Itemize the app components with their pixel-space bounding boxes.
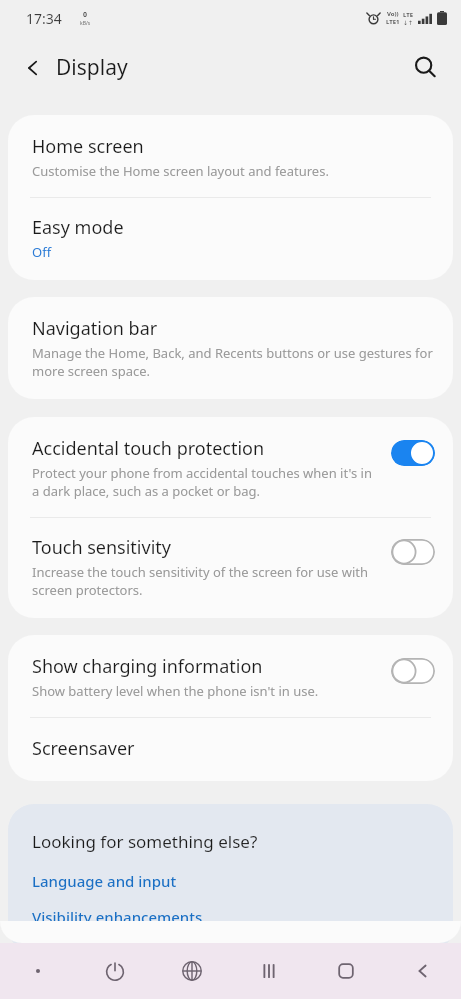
button[interactable]: Accidental touch protection xyxy=(8,417,453,517)
staticText: kB/s xyxy=(80,20,91,27)
staticText: Show charging information xyxy=(32,654,263,679)
button[interactable]: Show charging information off xyxy=(391,658,435,684)
button[interactable]: Search xyxy=(403,45,447,89)
button[interactable]: Globe xyxy=(153,943,230,999)
button[interactable]: Touch sensitivity xyxy=(8,518,453,618)
staticText: Language and input xyxy=(32,871,177,891)
button[interactable]: Language and input xyxy=(32,871,177,891)
staticText: LTE xyxy=(403,11,414,19)
button[interactable]: Visibility enhancements xyxy=(32,907,203,927)
staticText: Off xyxy=(32,243,52,261)
button[interactable]: Home screen xyxy=(8,115,453,197)
button[interactable]: Back xyxy=(0,45,136,90)
button[interactable]: Screensaver xyxy=(8,718,453,781)
staticText: Vo)) xyxy=(387,10,399,18)
staticText: Home screen xyxy=(32,134,144,159)
button[interactable]: Recents xyxy=(230,943,307,999)
button[interactable]: Accidental touch protection on xyxy=(391,440,435,466)
staticText: Show battery level when the phone isn't … xyxy=(32,682,319,700)
staticText: Easy mode xyxy=(32,215,124,240)
button[interactable]: Navigation bar xyxy=(8,297,453,399)
button[interactable]: Back xyxy=(384,943,461,999)
staticText: Manage the Home, Back, and Recents butto… xyxy=(32,344,435,380)
button[interactable]: Touch sensitivity off xyxy=(391,539,435,565)
staticText: LTE1 xyxy=(386,18,400,26)
button[interactable]: Home xyxy=(307,943,384,999)
staticText: Protect your phone from accidental touch… xyxy=(32,464,381,500)
staticText: Visibility enhancements xyxy=(32,907,203,927)
staticText: Screensaver xyxy=(32,736,135,761)
staticText: Customise the Home screen layout and fea… xyxy=(32,162,329,180)
button[interactable]: Show charging information xyxy=(8,635,453,717)
staticText: 17:34 xyxy=(26,9,62,28)
staticText: Navigation bar xyxy=(32,316,158,341)
staticText: Looking for something else? xyxy=(32,830,258,853)
staticText: Display xyxy=(56,53,128,82)
staticText: ↓↑ xyxy=(403,19,414,26)
other: Back xyxy=(20,55,46,81)
button[interactable]: Indicator xyxy=(0,943,76,999)
button[interactable]: Easy mode xyxy=(8,198,453,280)
staticText: Touch sensitivity xyxy=(32,535,171,560)
staticText: 0 xyxy=(83,10,88,20)
button[interactable]: Power xyxy=(76,943,153,999)
staticText: Accidental touch protection xyxy=(32,436,265,461)
staticText: Increase the touch sensitivity of the sc… xyxy=(32,563,381,599)
